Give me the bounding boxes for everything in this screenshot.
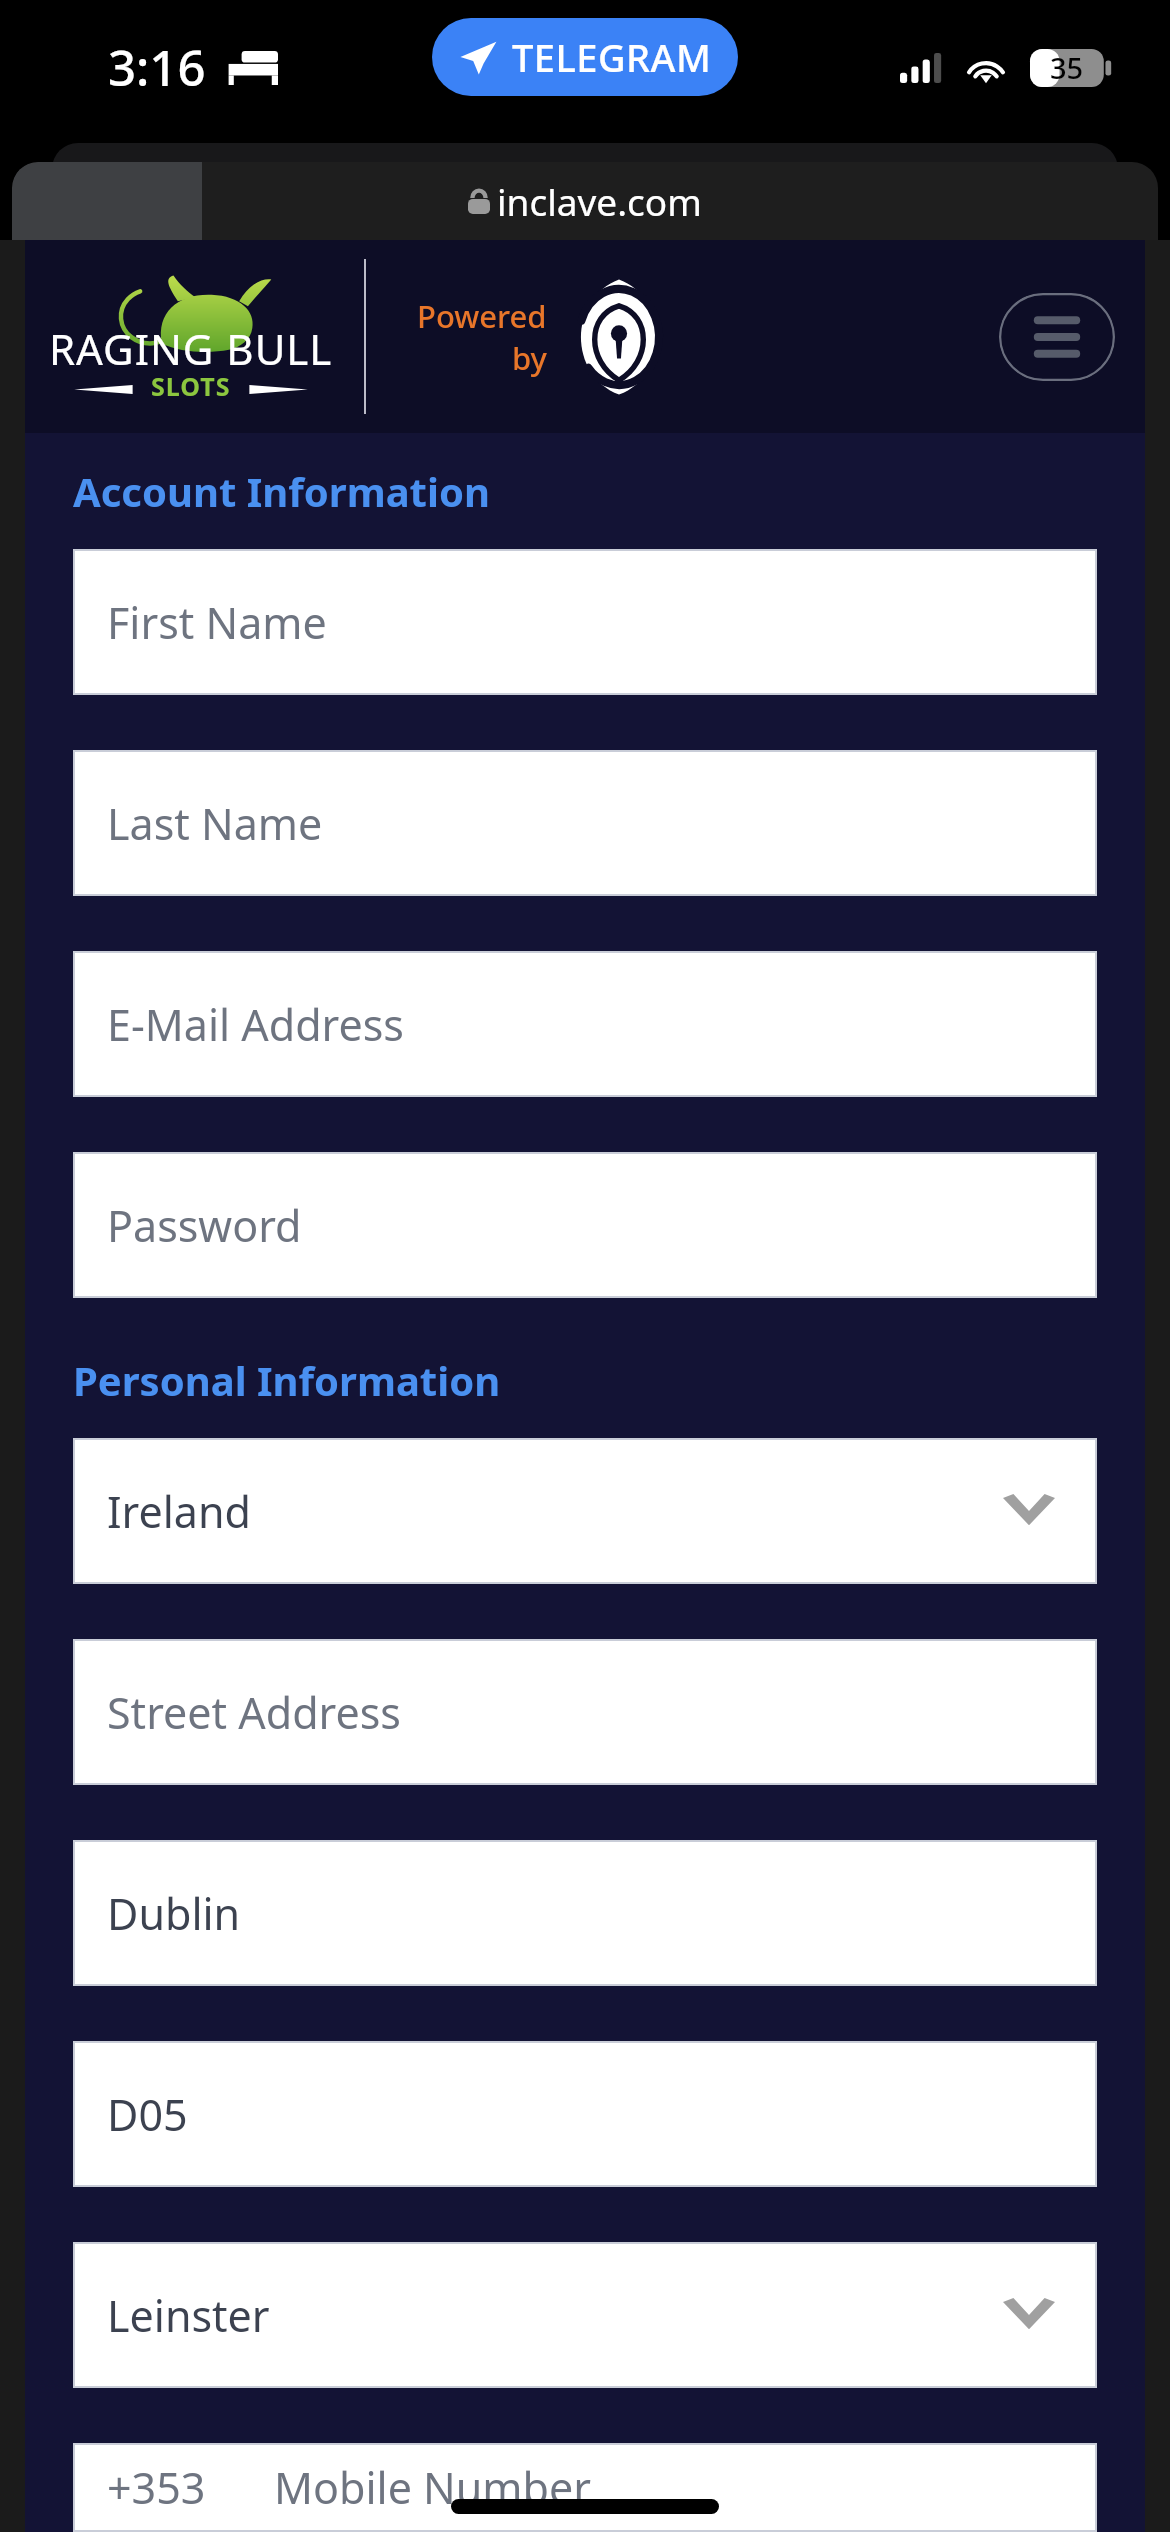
staticText: Account Information xyxy=(73,464,490,518)
staticText: D05 xyxy=(107,2085,188,2144)
staticText: E-Mail Address xyxy=(107,995,404,1054)
button[interactable]: Ireland xyxy=(75,1440,1095,1582)
staticText: Street Address xyxy=(107,1683,401,1742)
staticText: +353 xyxy=(107,2458,206,2517)
staticText: Dublin xyxy=(107,1884,241,1943)
button[interactable]: Dublin xyxy=(75,1842,1095,1984)
button[interactable]: +353 xyxy=(75,2445,1095,2530)
staticText: Powered xyxy=(417,295,547,337)
staticText: 35 xyxy=(1050,48,1084,87)
button[interactable]: Menu xyxy=(999,293,1115,381)
button[interactable]: Leinster xyxy=(75,2244,1095,2386)
button[interactable]: Password xyxy=(75,1154,1095,1296)
staticText: First Name xyxy=(107,593,327,652)
button[interactable]: D05 xyxy=(75,2043,1095,2185)
staticText: inclave.com xyxy=(497,176,702,226)
button[interactable]: Street Address xyxy=(75,1641,1095,1783)
staticText: Ireland xyxy=(107,1482,251,1541)
button[interactable]: E-Mail Address xyxy=(75,953,1095,1095)
staticText: Leinster xyxy=(107,2286,270,2345)
button[interactable]: inclave.com xyxy=(12,162,1158,240)
staticText: Personal Information xyxy=(73,1353,501,1407)
staticText: Last Name xyxy=(107,794,323,853)
staticText: SLOTS xyxy=(151,369,231,403)
button[interactable]: First Name xyxy=(75,551,1095,693)
staticText: by xyxy=(512,337,547,379)
button[interactable]: Last Name xyxy=(75,752,1095,894)
staticText: Password xyxy=(107,1196,302,1255)
staticText: 3:16 xyxy=(108,34,206,101)
staticText: TELEGRAM xyxy=(512,31,712,83)
button[interactable]: TELEGRAM xyxy=(432,18,738,96)
staticText: RAGING BULL xyxy=(49,320,333,377)
staticText: Mobile Number xyxy=(274,2458,591,2517)
